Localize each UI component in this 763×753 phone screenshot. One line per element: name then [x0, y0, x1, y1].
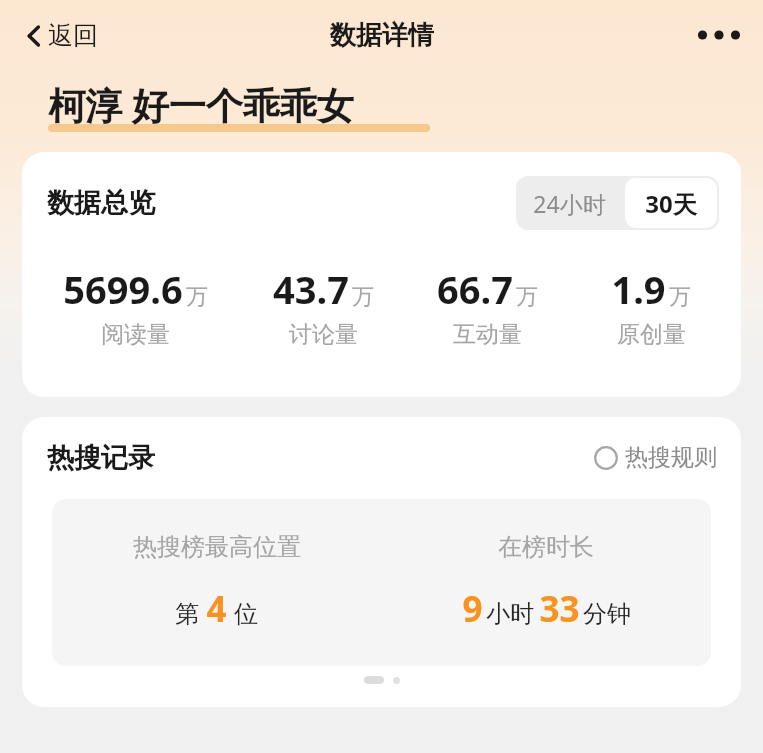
- staticText: 原创量: [617, 320, 686, 349]
- staticText: 热搜记录: [47, 441, 155, 475]
- staticText: 万: [186, 283, 208, 311]
- button[interactable]: 43.7: [241, 263, 405, 349]
- staticText: 24小时: [533, 188, 606, 219]
- staticText: 分钟: [583, 599, 631, 629]
- staticText: 在榜时长: [498, 532, 594, 562]
- staticText: 热搜规则: [625, 443, 717, 472]
- button[interactable]: 5699.6: [30, 263, 241, 349]
- staticText: 小时: [486, 599, 534, 629]
- button[interactable]: 66.7: [405, 263, 569, 349]
- button[interactable]: 1.9: [569, 263, 733, 349]
- button[interactable]: More options: [691, 13, 747, 57]
- staticText: 数据总览: [47, 186, 155, 220]
- staticText: 30天: [645, 187, 697, 220]
- staticText: 43.7: [273, 263, 349, 315]
- staticText: 9: [462, 585, 483, 633]
- staticText: 万: [352, 283, 374, 311]
- staticText: 4: [206, 585, 227, 633]
- staticText: 柯淳 好一个乖乖女: [48, 79, 354, 130]
- staticText: 第: [175, 599, 199, 629]
- button[interactable]: 24小时: [516, 176, 623, 230]
- button[interactable]: 热搜规则: [592, 439, 719, 476]
- staticText: 互动量: [453, 320, 522, 349]
- staticText: 热搜榜最高位置: [133, 532, 301, 562]
- staticText: 讨论量: [289, 320, 358, 349]
- button[interactable]: 30天: [625, 178, 717, 228]
- staticText: 万: [516, 283, 538, 311]
- button[interactable]: 返回: [18, 16, 104, 55]
- staticText: 阅读量: [101, 320, 170, 349]
- staticText: 返回: [48, 20, 98, 51]
- staticText: 1.9: [611, 263, 666, 315]
- staticText: 66.7: [437, 263, 513, 315]
- staticText: 33: [539, 585, 580, 633]
- staticText: 位: [234, 599, 258, 629]
- staticText: 数据详情: [330, 19, 434, 52]
- staticText: 5699.6: [63, 263, 183, 315]
- staticText: 万: [669, 283, 691, 311]
